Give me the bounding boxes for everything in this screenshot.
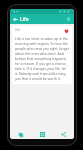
button[interactable]: Back: [10, 14, 20, 24]
button[interactable]: Life: [12, 26, 72, 84]
button[interactable]: Favorite: [63, 28, 69, 34]
staticText: Life: [15, 28, 21, 32]
button[interactable]: Copy: [10, 130, 32, 139]
button[interactable]: Bookmark: [63, 14, 73, 24]
staticText: Life is too short to wake up in the morn…: [15, 36, 69, 81]
staticText: Life: [20, 16, 29, 23]
button[interactable]: Share: [53, 130, 74, 139]
button[interactable]: Image: [32, 130, 53, 139]
